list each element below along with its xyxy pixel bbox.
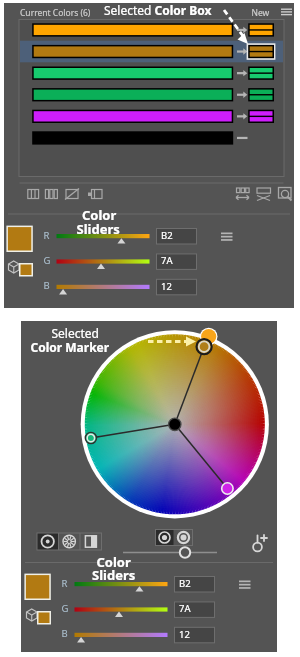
button[interactable]: Color panel screenshot (0, 0, 300, 657)
